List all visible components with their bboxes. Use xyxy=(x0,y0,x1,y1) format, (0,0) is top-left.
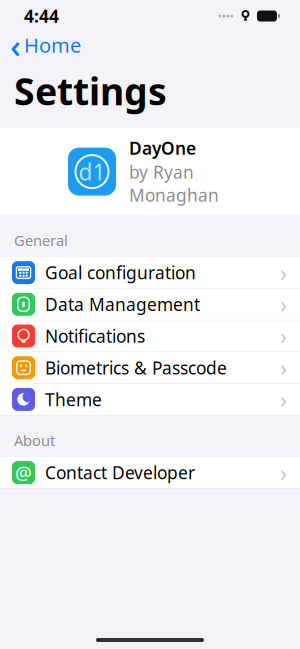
staticText: Goal configuration xyxy=(45,261,196,284)
button[interactable]: Goal configuration xyxy=(0,257,300,289)
staticText: Home xyxy=(24,32,81,58)
staticText: Theme xyxy=(45,388,102,411)
button[interactable]: Theme xyxy=(0,384,300,416)
staticText: Data Management xyxy=(45,293,200,316)
staticText: › xyxy=(280,321,287,351)
staticText: › xyxy=(280,353,287,383)
staticText: › xyxy=(280,258,287,288)
staticText: by Ryan Monaghan xyxy=(129,161,219,207)
staticText: DayOne xyxy=(129,137,196,160)
staticText: •••• xyxy=(218,10,234,22)
staticText: General xyxy=(14,231,68,250)
button[interactable]: Biometrics & Passcode xyxy=(0,352,300,384)
staticText: Biometrics & Passcode xyxy=(45,356,227,379)
staticText: Contact Developer xyxy=(45,461,195,484)
staticText: › xyxy=(280,384,287,414)
button[interactable]: ‹ xyxy=(0,33,89,57)
staticText: Notifications xyxy=(45,324,145,347)
button[interactable]: Notifications xyxy=(0,320,300,352)
staticText: › xyxy=(280,289,287,319)
staticText: @ xyxy=(15,460,32,485)
staticText: Settings xyxy=(14,66,167,116)
staticText: 4:44 xyxy=(24,4,59,27)
staticText: About xyxy=(14,431,55,450)
button[interactable]: Data Management xyxy=(0,289,300,320)
staticText: d1 xyxy=(78,157,105,187)
staticText: › xyxy=(280,457,287,488)
button[interactable]: @ xyxy=(0,457,300,489)
staticText: ‹ xyxy=(10,23,21,67)
